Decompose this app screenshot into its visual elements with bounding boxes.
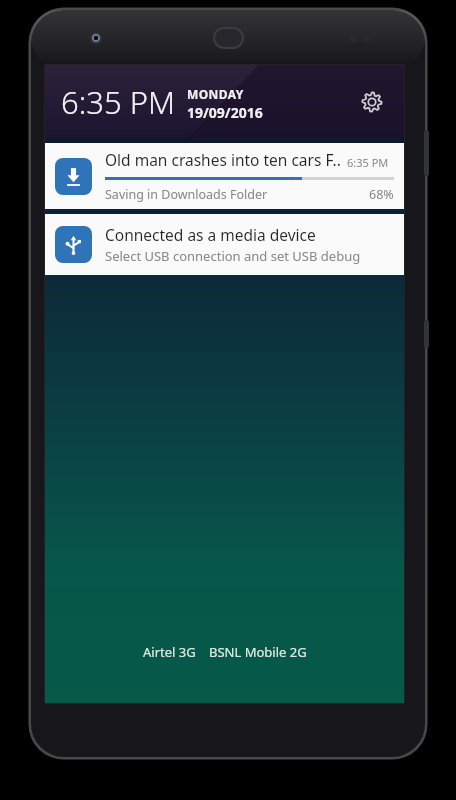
staticText: 6:35 PM xyxy=(61,81,176,123)
button[interactable]: Settings xyxy=(354,84,390,120)
staticText: Old man crashes into ten cars F.. xyxy=(105,149,341,170)
staticText: 19/09/2016 xyxy=(187,103,263,122)
staticText: Connected as a media device xyxy=(105,224,316,245)
staticText: 6:35 PM xyxy=(347,155,389,170)
staticText: 68% xyxy=(369,186,394,203)
staticText: Saving in Downloads Folder xyxy=(105,186,369,203)
staticText: MONDAY xyxy=(187,86,244,102)
staticText: Airtel 3G xyxy=(143,643,196,661)
button[interactable]: Old man crashes into ten cars F.. xyxy=(45,143,404,209)
button[interactable]: Connected as a media device xyxy=(45,214,404,275)
staticText: BSNL Mobile 2G xyxy=(209,643,307,661)
staticText: Select USB connection and set USB debug xyxy=(105,247,361,265)
